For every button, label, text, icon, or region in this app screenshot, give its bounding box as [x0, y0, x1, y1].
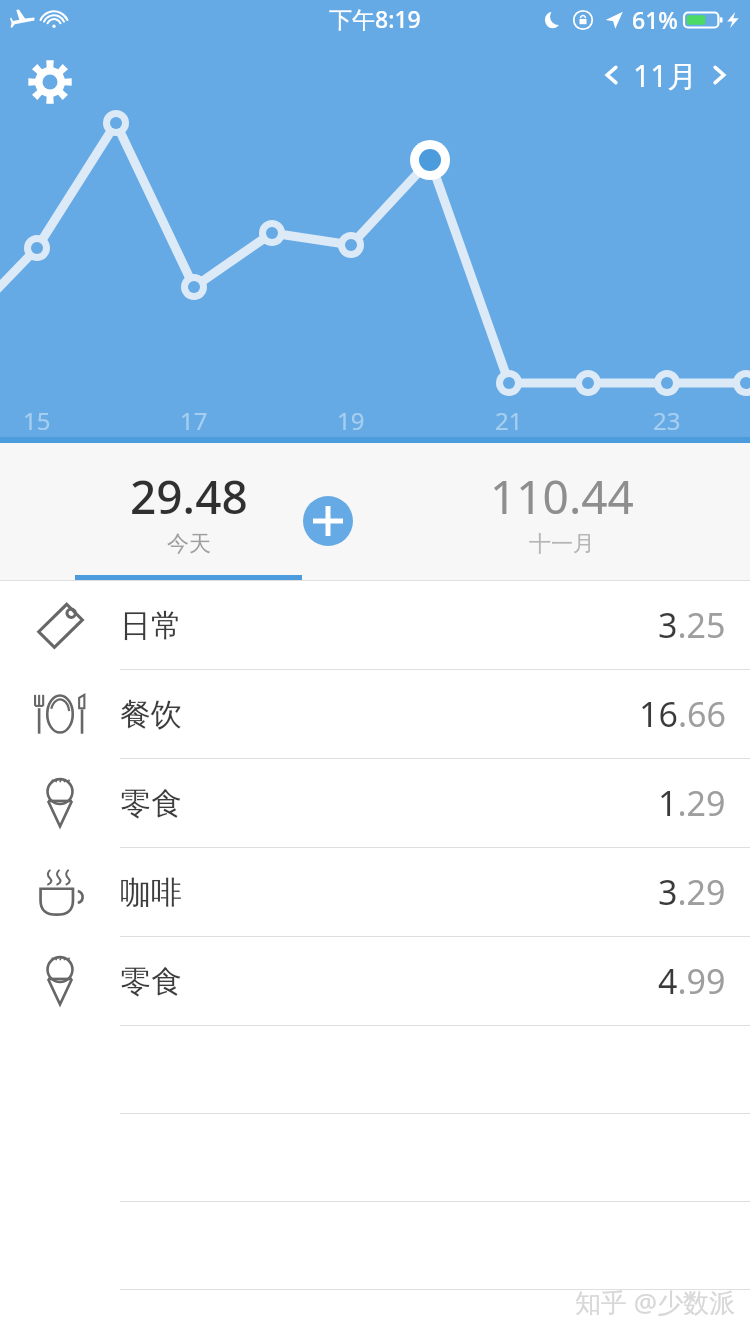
button[interactable]: 110.44	[448, 443, 675, 581]
staticText: 61%	[632, 4, 678, 35]
staticText: 零食	[120, 962, 182, 1001]
staticText: 知乎 @少数派	[575, 1284, 736, 1320]
button[interactable]: Next month	[698, 54, 740, 96]
staticText: 19	[337, 404, 365, 437]
button[interactable]: 29.48	[75, 443, 302, 581]
button[interactable]: 日常	[0, 581, 750, 669]
button[interactable]: 餐饮	[0, 670, 750, 758]
button[interactable]: 咖啡	[0, 848, 750, 936]
staticText: 咖啡	[120, 873, 182, 912]
staticText: 零食	[120, 784, 182, 823]
staticText: 11月	[633, 55, 698, 96]
button[interactable]: Previous month	[591, 54, 633, 96]
staticText: 17	[180, 404, 208, 437]
staticText: 餐饮	[120, 695, 182, 734]
staticText: 21	[495, 404, 523, 437]
button[interactable]: 零食	[0, 759, 750, 847]
button[interactable]: Add expense	[303, 496, 353, 546]
staticText: 1.29	[658, 780, 726, 826]
staticText: 15	[23, 404, 51, 437]
staticText: 3.25	[658, 602, 726, 648]
staticText: 今天	[167, 530, 211, 558]
staticText: 下午8:19	[329, 3, 421, 34]
staticText: 16.66	[639, 691, 726, 737]
staticText: 4.99	[658, 958, 726, 1004]
staticText: 23	[653, 404, 681, 437]
staticText: 110.44	[490, 465, 634, 528]
staticText: 29.48	[130, 465, 248, 528]
staticText: 日常	[120, 606, 182, 645]
button[interactable]: Settings	[20, 52, 80, 112]
staticText: 十一月	[529, 530, 595, 558]
staticText: 3.29	[658, 869, 726, 915]
button[interactable]: 零食	[0, 937, 750, 1025]
